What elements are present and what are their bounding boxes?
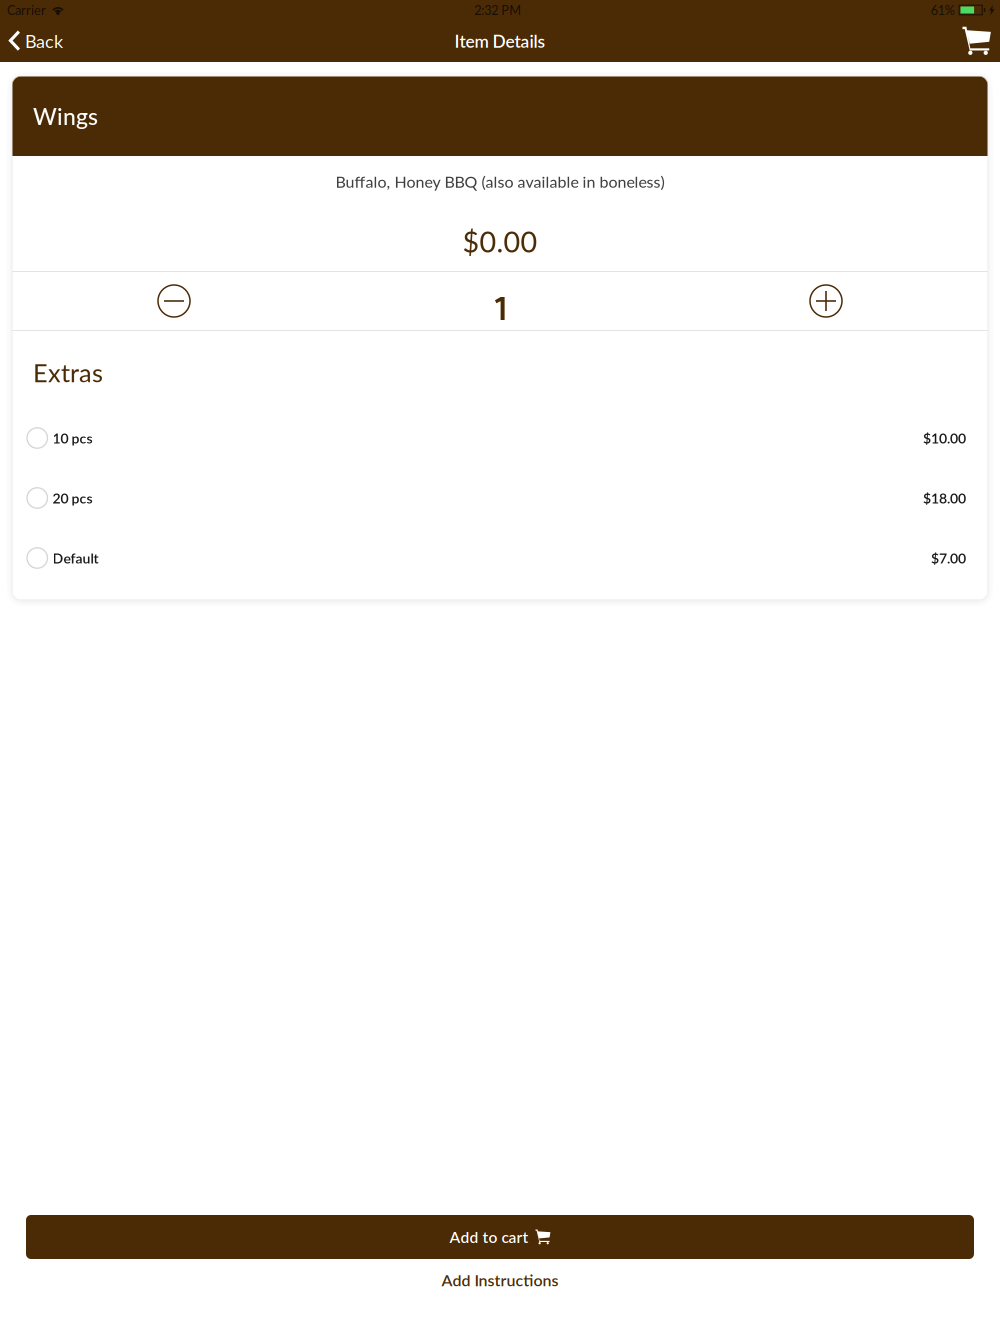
button[interactable]: Add to cart: [26, 1215, 974, 1259]
button[interactable]: Cart: [946, 20, 1000, 62]
staticText: Wings: [33, 102, 98, 130]
button[interactable]: Back: [0, 20, 77, 62]
staticText: Item Details: [454, 31, 545, 51]
staticText: $18.00: [923, 490, 966, 506]
staticText: $10.00: [923, 430, 966, 446]
button[interactable]: 10 pcs: [12, 408, 988, 468]
staticText: Carrier: [7, 2, 46, 18]
staticText: 2:32 PM: [474, 2, 521, 18]
button[interactable]: Increase quantity: [809, 284, 843, 318]
button[interactable]: 20 pcs: [12, 468, 988, 528]
staticText: Add Instructions: [441, 1270, 558, 1290]
staticText: 61%: [931, 2, 955, 18]
staticText: 10 pcs: [52, 430, 92, 446]
button[interactable]: Default: [12, 528, 988, 588]
button[interactable]: Decrease quantity: [157, 284, 191, 318]
staticText: Extras: [33, 357, 103, 388]
staticText: Default: [52, 550, 98, 566]
staticText: Add to cart: [449, 1228, 528, 1246]
staticText: Back: [25, 30, 63, 52]
staticText: $0.00: [462, 224, 537, 259]
staticText: Buffalo, Honey BBQ (also available in bo…: [335, 172, 664, 191]
staticText: $7.00: [931, 550, 966, 566]
button[interactable]: Add Instructions: [26, 1259, 974, 1301]
staticText: 20 pcs: [52, 490, 92, 506]
